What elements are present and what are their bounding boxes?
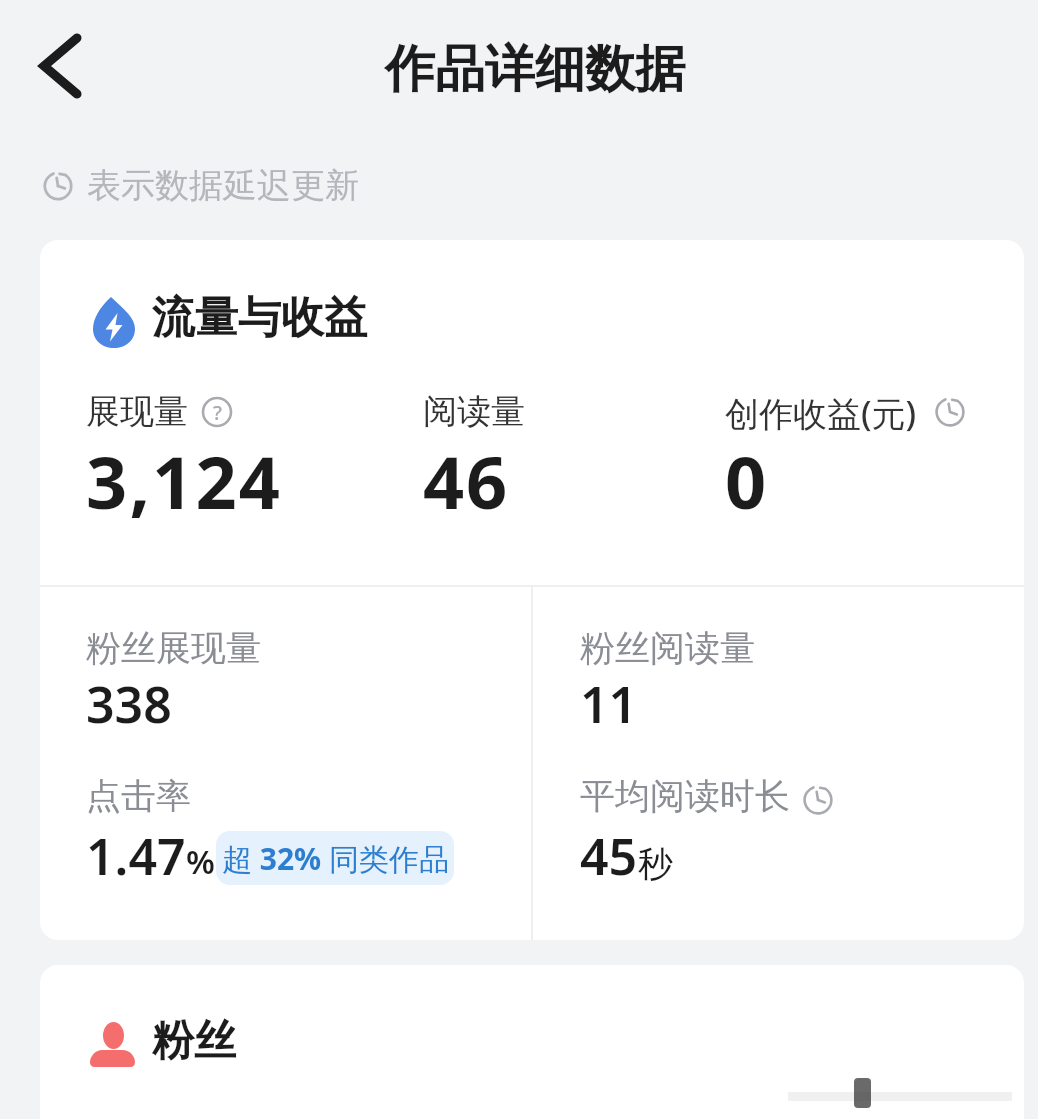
staticText: 创作收益(元) bbox=[725, 390, 917, 436]
staticText: 0 bbox=[725, 432, 767, 530]
staticText: 338 bbox=[86, 670, 172, 738]
staticText: 45 bbox=[580, 822, 638, 890]
staticText: 1.47 bbox=[86, 822, 186, 890]
staticText: 3,124 bbox=[86, 432, 283, 530]
staticText: 粉丝阅读量 bbox=[580, 626, 755, 670]
staticText: 11 bbox=[580, 670, 638, 738]
staticText: 46 bbox=[423, 432, 509, 530]
staticText: ? bbox=[213, 399, 222, 426]
staticText: 作品详细数据 bbox=[385, 38, 685, 101]
staticText: 超 32% 同类作品 bbox=[222, 838, 449, 879]
staticText: 展现量 bbox=[86, 390, 188, 433]
staticText: 粉丝展现量 bbox=[86, 626, 261, 670]
button[interactable]: 超 32% 同类作品 bbox=[216, 831, 454, 885]
staticText: 流量与收益 bbox=[152, 291, 367, 345]
staticText: 平均阅读时长 bbox=[580, 774, 790, 818]
staticText: % bbox=[186, 839, 215, 884]
staticText: 表示数据延迟更新 bbox=[87, 164, 359, 207]
staticText: 秒 bbox=[638, 842, 673, 886]
staticText: 点击率 bbox=[86, 774, 191, 818]
staticText: 粉丝 bbox=[152, 1015, 236, 1068]
staticText: 阅读量 bbox=[423, 390, 525, 433]
button[interactable] bbox=[30, 27, 90, 107]
